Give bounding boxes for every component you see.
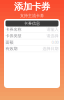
staticText: 卡券信息 [24, 21, 40, 26]
staticText: 添加卡券 [14, 1, 50, 12]
staticText: 卡券类型 [5, 33, 21, 38]
staticText: 0.00 [51, 40, 58, 45]
staticText: 面额 [5, 40, 13, 45]
staticText: 卡券名称 [5, 27, 21, 32]
staticText: 有效期 [5, 46, 17, 51]
staticText: 支持主流卡券 [20, 13, 44, 18]
staticText: 选择日期 [42, 46, 58, 51]
staticText: 请选择 [46, 33, 58, 38]
staticText: 请输入 [46, 27, 58, 32]
